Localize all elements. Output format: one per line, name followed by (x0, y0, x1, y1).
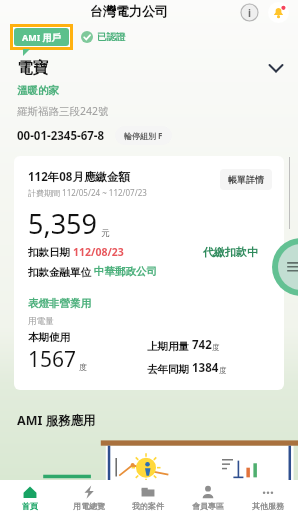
staticText: 度 (212, 343, 220, 352)
button[interactable]: 帳單詳情 (220, 169, 272, 190)
button[interactable]: 輪停組別 F (115, 126, 172, 145)
button[interactable]: Notifications (268, 2, 289, 23)
staticText: 扣款金融單位 (28, 265, 94, 279)
staticText: 表燈非營業用 (28, 297, 91, 310)
button[interactable]: 會員專區 (178, 480, 238, 516)
staticText: 用電總覽 (73, 501, 105, 511)
staticText: 112/08/23 (73, 245, 124, 259)
staticText: 112年08月應繳金額 (28, 169, 130, 185)
staticText: 溫暖的家 (17, 84, 59, 97)
button[interactable]: 已認證 (81, 31, 126, 43)
staticText: 00-01-2345-67-8 (17, 128, 105, 144)
staticText: 5,359 (28, 205, 98, 242)
button[interactable]: AMI 用戶 (14, 28, 69, 46)
staticText: 用電量 (28, 316, 54, 327)
staticText: 帳單詳情 (228, 174, 264, 185)
staticText: 度 (79, 362, 87, 372)
button[interactable]: Expand account (265, 57, 287, 79)
staticText: 其他服務 (252, 501, 284, 511)
button[interactable]: Info (240, 3, 259, 22)
button[interactable]: 112年08月應繳金額 (14, 156, 284, 390)
staticText: 中華郵政公司 (94, 265, 157, 278)
staticText: 去年同期 (147, 362, 192, 376)
button[interactable]: Quick menu (272, 238, 298, 296)
staticText: 742 (192, 337, 212, 353)
staticText: 羅斯福路三段242號 (17, 104, 109, 118)
staticText: 代繳扣款中 (203, 245, 258, 259)
staticText: 電寶 (17, 58, 48, 78)
staticText: 1567 (28, 345, 77, 374)
staticText: 1384 (192, 360, 219, 376)
staticText: 本期使用 (28, 331, 70, 344)
staticText: 扣款日期 (28, 245, 73, 259)
staticText: 台灣電力公司 (90, 3, 168, 19)
staticText: AMI 用戶 (22, 31, 61, 43)
staticText: 已認證 (97, 31, 126, 43)
staticText: 上期用量 (147, 339, 192, 353)
button[interactable]: 首頁 (0, 480, 59, 516)
button[interactable]: 我的案件 (118, 480, 178, 516)
staticText: 度 (219, 366, 227, 375)
staticText: 首頁 (22, 501, 38, 511)
button[interactable]: 用電總覽 (59, 480, 118, 516)
staticText: 計費期間 112/05/24 ~ 112/07/23 (28, 187, 147, 198)
staticText: i (248, 6, 251, 20)
staticText: 會員專區 (192, 501, 224, 511)
staticText: 輪停組別 F (124, 130, 163, 141)
staticText: 我的案件 (132, 501, 164, 511)
staticText: 元 (101, 228, 110, 239)
button[interactable]: 其他服務 (238, 480, 298, 516)
staticText: AMI 服務應用 (17, 412, 96, 429)
